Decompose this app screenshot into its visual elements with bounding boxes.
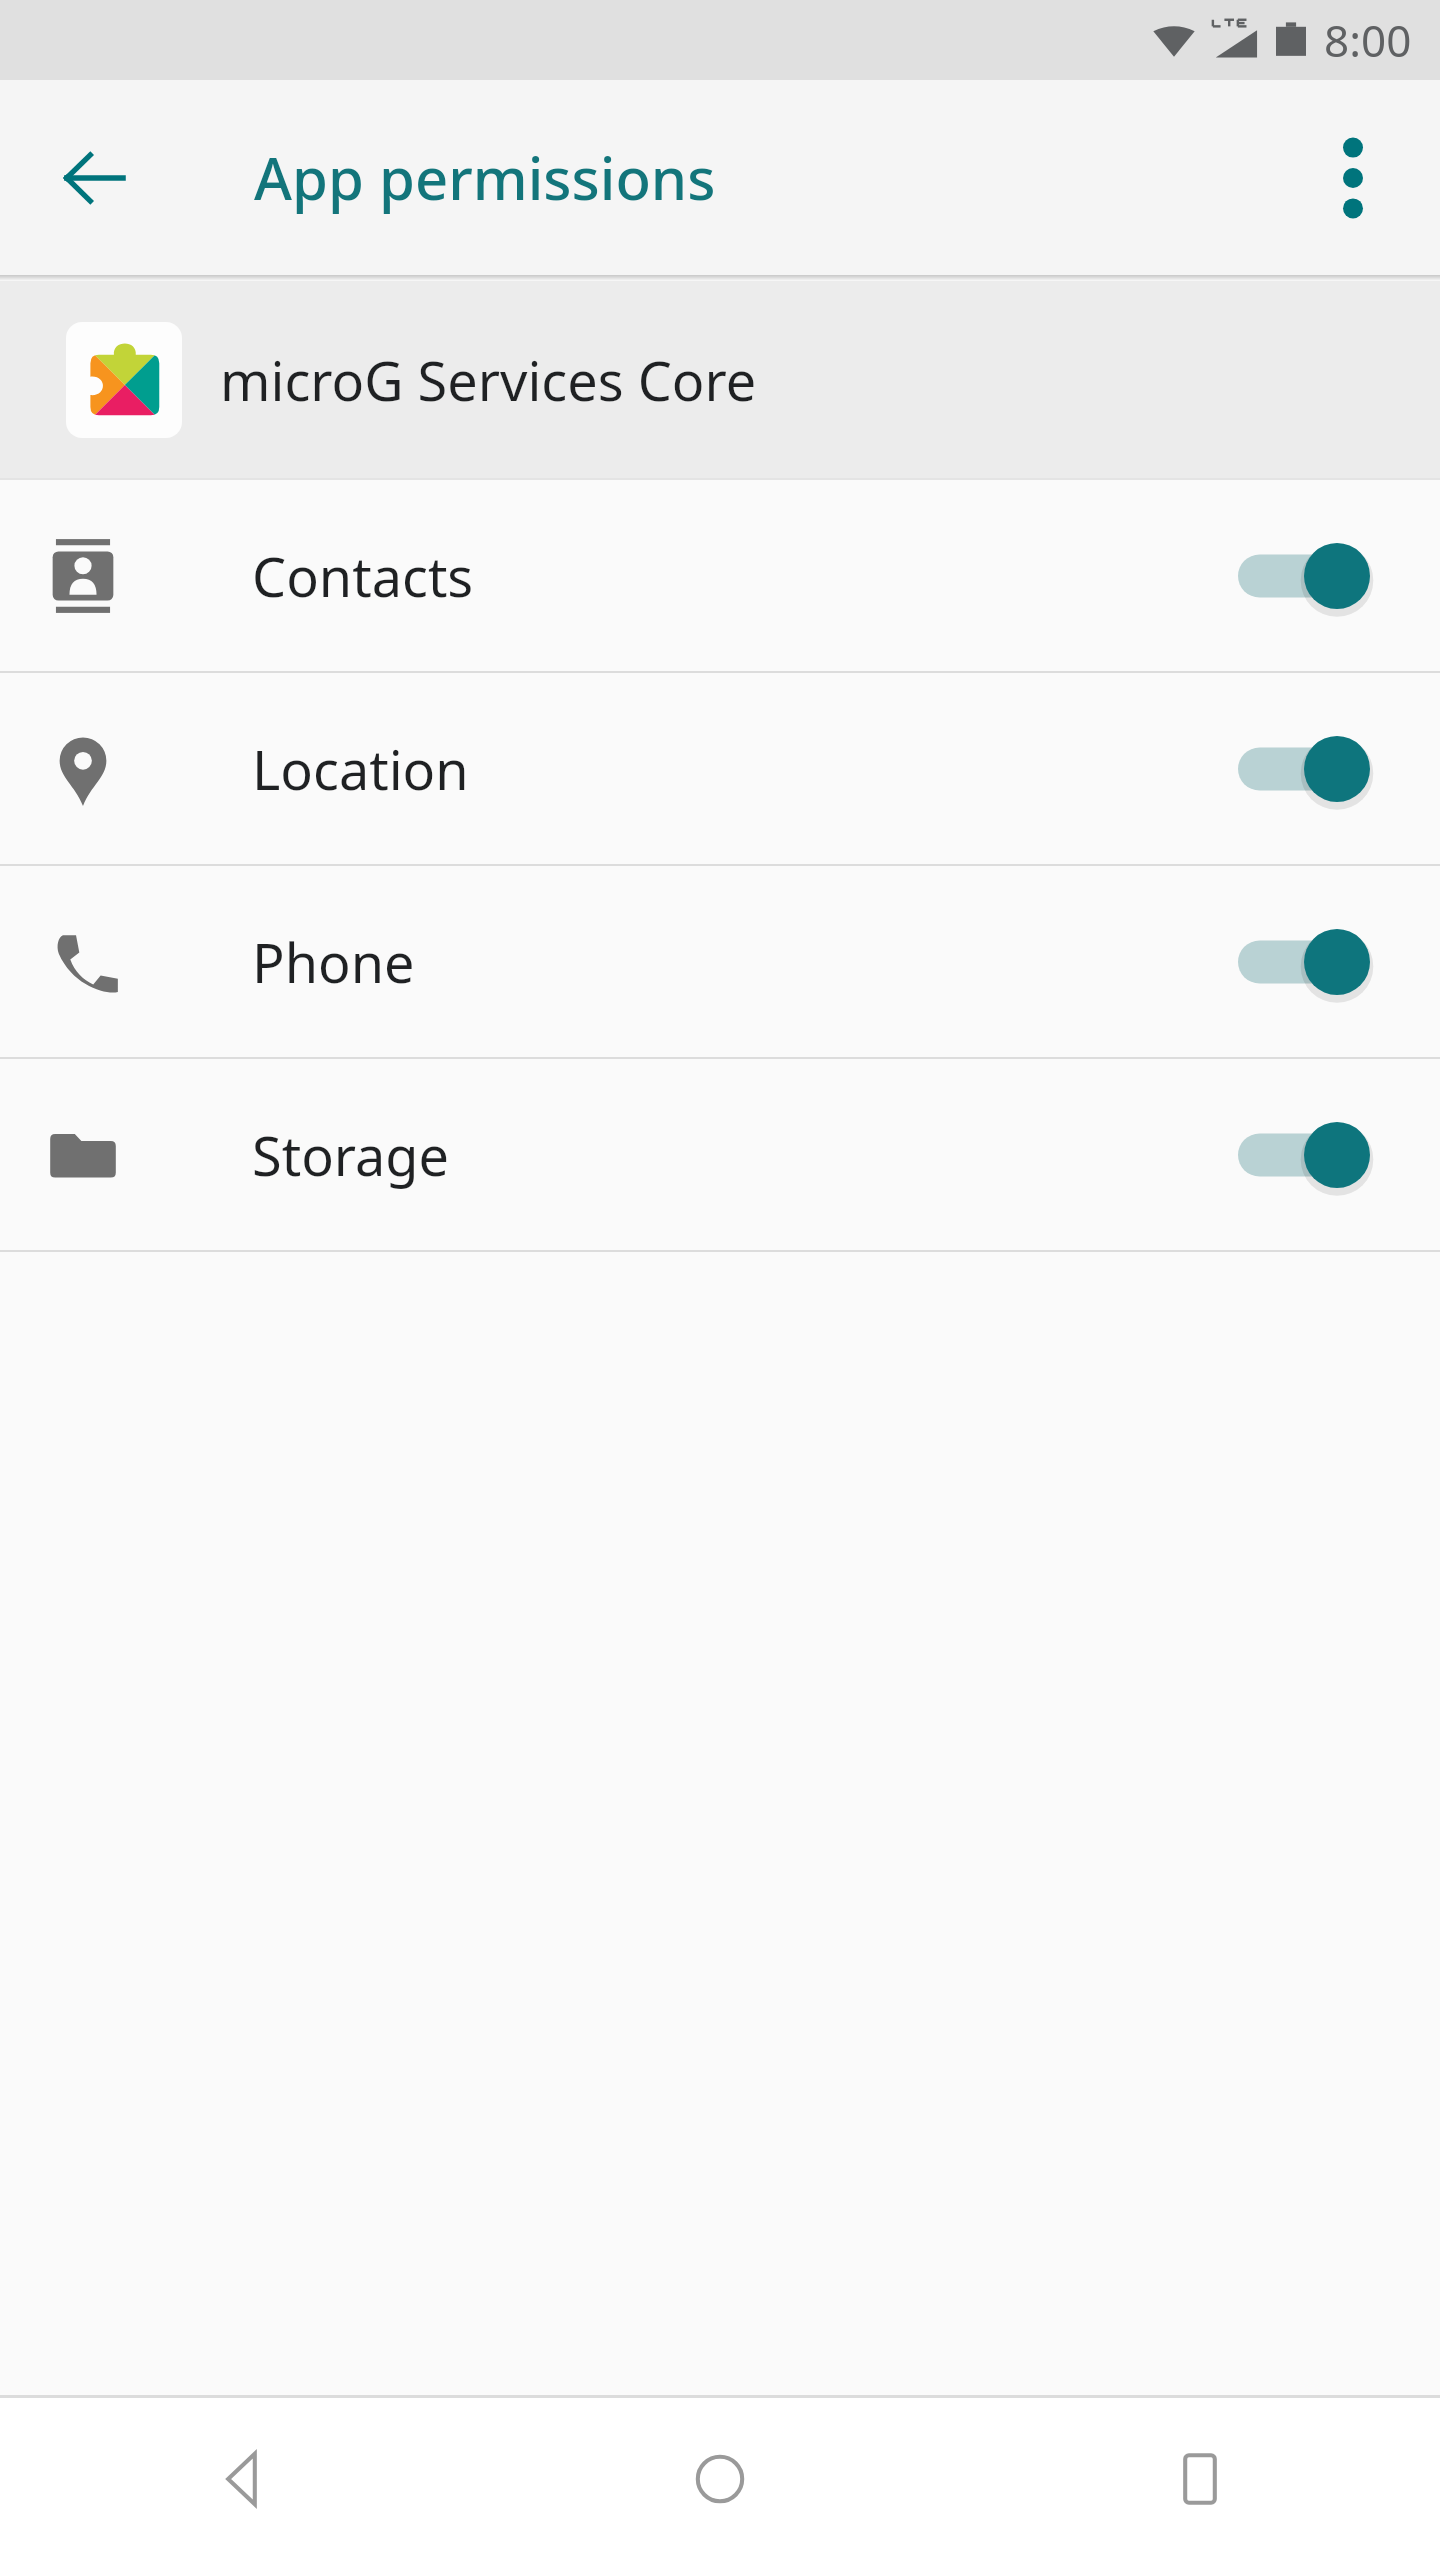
button[interactable]: Contacts permission toggle [1232, 526, 1382, 626]
button[interactable]: Storage permission toggle [1232, 1105, 1382, 1205]
staticText: Phone [252, 925, 415, 999]
button[interactable]: Back [38, 122, 150, 234]
staticText: Storage [252, 1118, 449, 1192]
button[interactable]: Contacts [0, 480, 1440, 671]
staticText: Location [252, 732, 469, 806]
button[interactable]: Recents [960, 2398, 1440, 2560]
staticText: Contacts [252, 539, 474, 613]
button[interactable]: Location [0, 673, 1440, 864]
button[interactable]: Storage [0, 1059, 1440, 1250]
button[interactable]: Home [480, 2398, 960, 2560]
staticText: microG Services Core [220, 343, 757, 417]
staticText: 8:00 [1324, 10, 1412, 70]
button[interactable]: Back [0, 2398, 480, 2560]
button[interactable]: Phone [0, 866, 1440, 1057]
button[interactable]: More options [1298, 123, 1408, 233]
staticText: App permissions [254, 138, 716, 217]
button[interactable]: Phone permission toggle [1232, 912, 1382, 1012]
button[interactable]: microG Services Core [0, 281, 1440, 478]
button[interactable]: Location permission toggle [1232, 719, 1382, 819]
